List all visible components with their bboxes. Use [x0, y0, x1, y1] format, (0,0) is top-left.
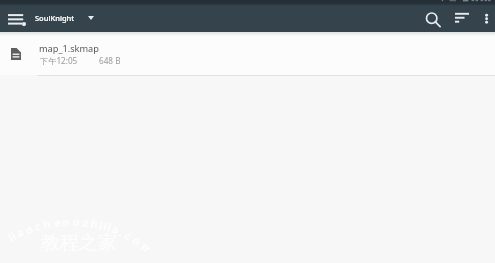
staticText: 下午12:05	[40, 55, 78, 66]
staticText: 648 B	[99, 55, 121, 66]
button[interactable]: Open navigation drawer	[2, 7, 29, 31]
button[interactable]: map_1.skmap	[0, 32, 495, 75]
staticText: SoulKnight	[35, 13, 75, 23]
button[interactable]: Change folder	[83, 9, 98, 27]
button[interactable]: Sort	[447, 5, 474, 32]
button[interactable]: More options	[476, 5, 495, 32]
staticText: map_1.skmap	[39, 42, 99, 55]
button[interactable]: Search	[418, 5, 445, 32]
